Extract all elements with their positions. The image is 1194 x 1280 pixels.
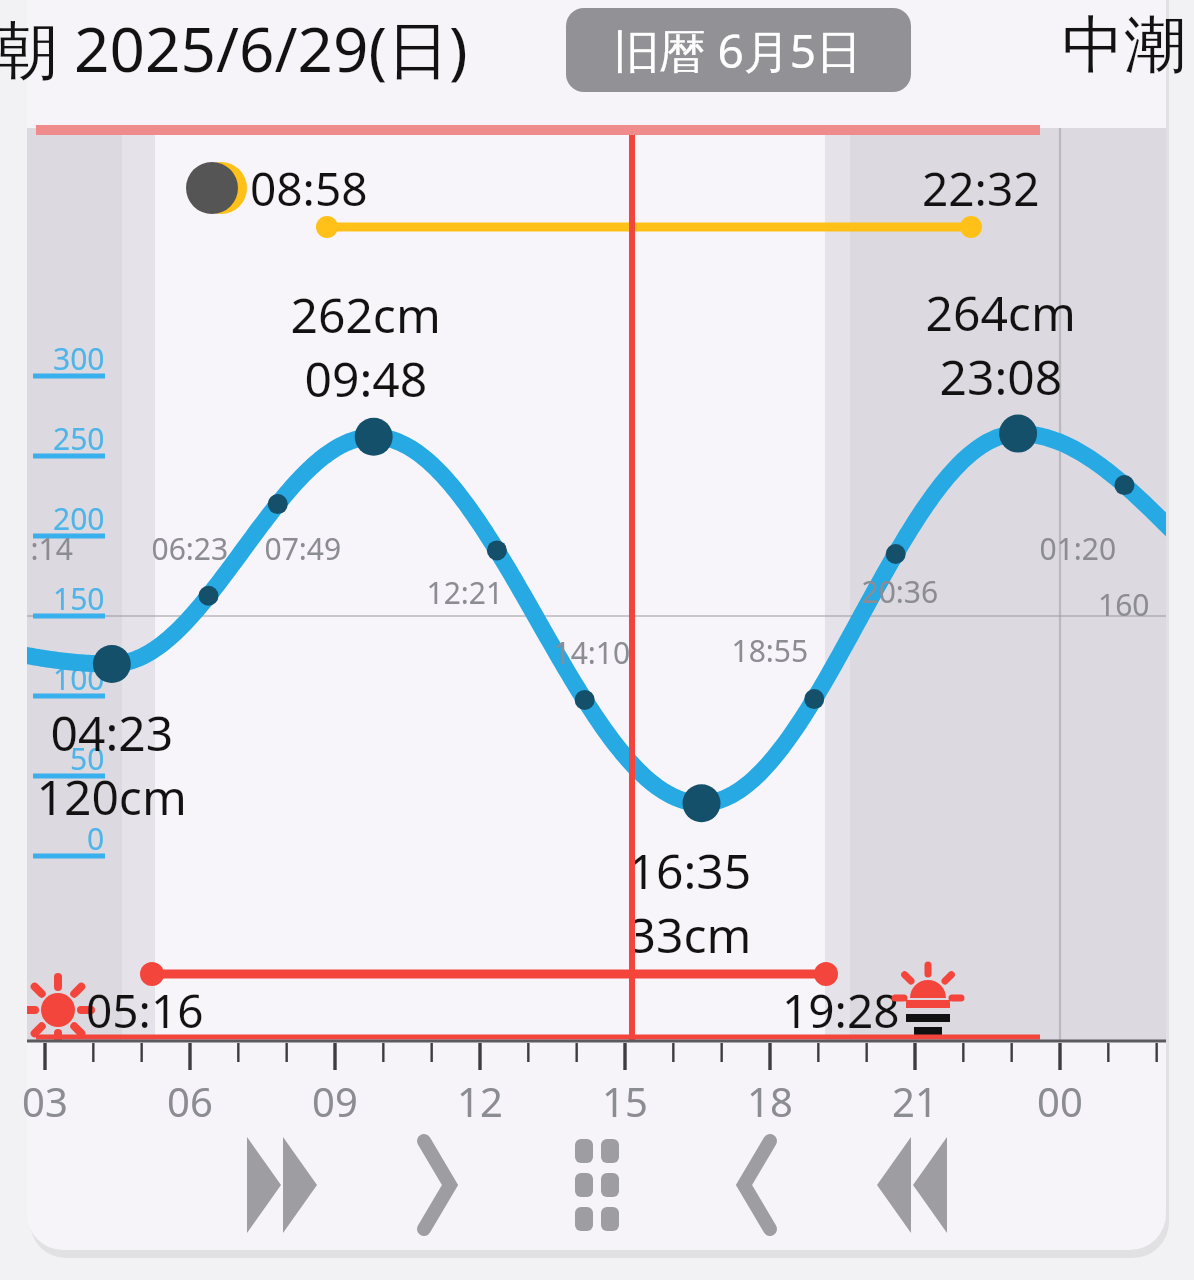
button[interactable]: Previous day bbox=[390, 1135, 490, 1235]
button[interactable]: 旧暦 6月5日 bbox=[566, 8, 911, 92]
button[interactable]: Next week bbox=[862, 1135, 972, 1235]
button[interactable]: Next day bbox=[708, 1135, 808, 1235]
button[interactable]: Previous week bbox=[232, 1135, 342, 1235]
button[interactable]: Menu bbox=[548, 1135, 648, 1235]
button[interactable]: Tide chart bbox=[27, 120, 1166, 1040]
